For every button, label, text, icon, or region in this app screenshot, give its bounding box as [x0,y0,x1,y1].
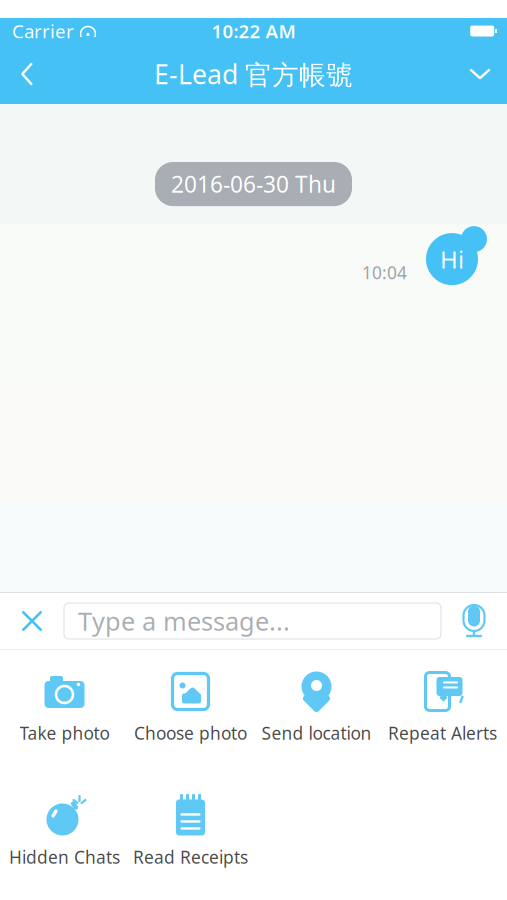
button[interactable]: Send location [253,664,379,750]
button[interactable]: Record voice message [441,593,507,649]
staticText: 10:22 AM [211,19,295,43]
staticText: Type a message... [78,604,290,638]
staticText: Carrier [12,19,74,43]
button[interactable]: Repeat Alerts [379,664,505,750]
button[interactable]: Type a message... [64,603,441,639]
staticText: Repeat Alerts [388,721,497,744]
button[interactable]: Close [0,593,64,649]
staticText: Hidden Chats [9,845,120,868]
button[interactable]: Hidden Chats [1,788,127,874]
staticText: 2016-06-30 Thu [171,169,336,199]
staticText: 10:04 [362,261,407,284]
staticText: Send location [261,721,371,744]
button[interactable]: Hide keyboard [453,50,507,98]
button[interactable]: Choose photo [127,664,253,750]
staticText: Take photo [19,721,109,744]
staticText: Hi [440,243,464,275]
button[interactable]: Read Receipts [127,788,253,874]
staticText: E-Lead 官方帳號 [154,56,353,92]
staticText: Read Receipts [133,845,248,868]
staticText: Choose photo [134,721,247,744]
button[interactable]: Take photo [1,664,127,750]
button[interactable]: Back [0,50,54,98]
